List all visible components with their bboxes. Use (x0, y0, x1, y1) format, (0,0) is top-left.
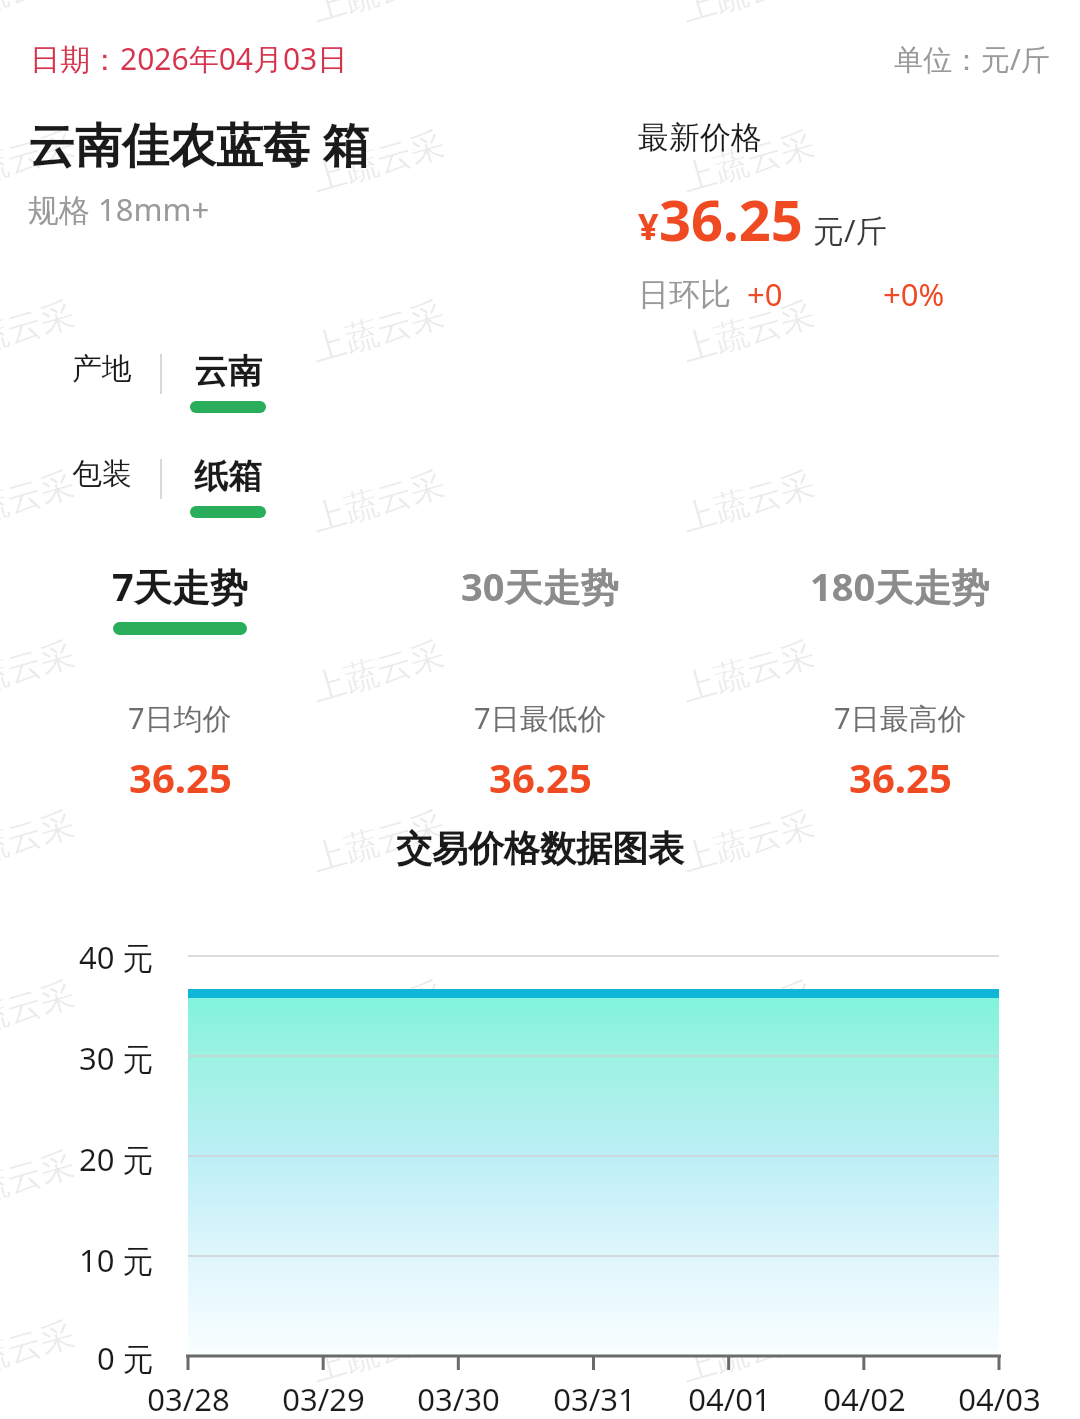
staticText: 上蔬云采 (677, 972, 819, 1051)
staticText: ¥ (638, 202, 659, 251)
staticText: 日期：2026年04月03日 (30, 38, 348, 79)
staticText: 上蔬云采 (677, 0, 819, 31)
staticText: 上蔬云采 (0, 462, 79, 541)
staticText: 交易价格数据图表 (396, 826, 684, 871)
button[interactable]: 7天走势 (0, 560, 360, 635)
staticText: 7日最低价 (474, 698, 607, 738)
staticText: 上蔬云采 (307, 1142, 449, 1221)
staticText: 产地 (72, 350, 132, 388)
staticText: 上蔬云采 (0, 1312, 79, 1391)
staticText: 20 元 (79, 1138, 154, 1180)
staticText: 03/28 (147, 1378, 230, 1419)
staticText: 7天走势 (112, 560, 248, 612)
staticText: 04/03 (958, 1378, 1041, 1419)
staticText: 上蔬云采 (0, 122, 79, 201)
staticText: 上蔬云采 (0, 632, 79, 711)
staticText: 上蔬云采 (677, 802, 819, 881)
staticText: 上蔬云采 (307, 632, 449, 711)
staticText: 36.25 (489, 750, 592, 804)
staticText: 云南 (194, 350, 262, 393)
staticText: 上蔬云采 (677, 122, 819, 201)
staticText: 36.25 (129, 750, 232, 804)
staticText: 30 元 (79, 1037, 154, 1079)
button[interactable]: 产地 (0, 350, 1080, 413)
staticText: 180天走势 (810, 560, 990, 612)
staticText: 04/02 (823, 1378, 906, 1419)
staticText: 元/斤 (813, 209, 887, 251)
button[interactable]: 包装 (0, 455, 1080, 518)
staticText: 单位：元/斤 (894, 39, 1050, 79)
staticText: 上蔬云采 (307, 972, 449, 1051)
staticText: 上蔬云采 (307, 462, 449, 541)
button[interactable]: 180天走势 (720, 560, 1080, 622)
staticText: +0% (883, 273, 945, 315)
staticText: 36.25 (849, 750, 952, 804)
staticText: 7日最高价 (834, 698, 967, 738)
staticText: 上蔬云采 (677, 1142, 819, 1221)
staticText: 上蔬云采 (677, 632, 819, 711)
staticText: 纸箱 (194, 455, 262, 498)
staticText: 上蔬云采 (677, 292, 819, 371)
staticText: 上蔬云采 (0, 972, 79, 1051)
staticText: 规格 18mm+ (28, 188, 210, 230)
staticText: 10 元 (79, 1239, 154, 1281)
staticText: 30天走势 (461, 560, 619, 612)
staticText: 上蔬云采 (0, 802, 79, 881)
staticText: +0 (747, 273, 783, 315)
staticText: 上蔬云采 (307, 0, 449, 31)
staticText: 上蔬云采 (307, 122, 449, 201)
staticText: 上蔬云采 (307, 802, 449, 881)
staticText: 上蔬云采 (0, 292, 79, 371)
staticText: 上蔬云采 (677, 1312, 819, 1391)
staticText: 04/01 (688, 1378, 771, 1419)
staticText: 上蔬云采 (0, 1142, 79, 1221)
staticText: 36.25 (659, 181, 803, 257)
staticText: 0 元 (97, 1337, 154, 1379)
staticText: 日环比 (638, 275, 731, 314)
staticText: 云南佳农蓝莓 箱 (28, 112, 370, 176)
staticText: 03/31 (553, 1378, 636, 1419)
staticText: 03/30 (417, 1378, 500, 1419)
staticText: 上蔬云采 (307, 292, 449, 371)
staticText: 40 元 (79, 936, 154, 978)
staticText: 最新价格 (638, 118, 762, 157)
staticText: 上蔬云采 (677, 462, 819, 541)
staticText: 包装 (72, 455, 132, 493)
staticText: 7日均价 (128, 698, 232, 738)
staticText: 03/29 (282, 1378, 365, 1419)
button[interactable]: 30天走势 (360, 560, 720, 622)
staticText: 上蔬云采 (307, 1312, 449, 1391)
